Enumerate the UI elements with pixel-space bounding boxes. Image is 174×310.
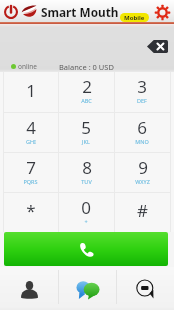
button[interactable]: Instant messaging [117, 267, 174, 310]
staticText: 2 [82, 75, 92, 98]
button[interactable]: 6 [114, 113, 170, 152]
staticText: DEF [137, 97, 147, 104]
staticText: # [137, 199, 148, 222]
staticText: 6 [137, 116, 147, 139]
staticText: MNO [135, 138, 149, 145]
button[interactable]: # [114, 193, 170, 232]
button[interactable]: 1 [3, 72, 58, 112]
staticText: 4 [26, 116, 36, 139]
button[interactable]: Call [4, 232, 168, 266]
staticText: 8 [82, 156, 92, 179]
staticText: PQRS [23, 178, 38, 185]
button[interactable]: 5 [58, 113, 114, 152]
button[interactable]: 9 [114, 153, 170, 192]
staticText: 1 [26, 79, 36, 102]
staticText: ABC [81, 97, 92, 104]
button[interactable]: Messages [59, 267, 116, 310]
button[interactable]: Power off [1, 1, 20, 23]
button[interactable]: 3 [114, 72, 170, 112]
staticText: 3 [137, 75, 147, 98]
button[interactable]: 8 [58, 153, 114, 192]
button[interactable]: 4 [3, 113, 58, 152]
button[interactable]: 2 [58, 72, 114, 112]
staticText: GHI [26, 138, 36, 145]
button[interactable]: * [3, 193, 58, 232]
staticText: TUV [81, 178, 92, 185]
staticText: Smart Mouth [41, 4, 119, 20]
staticText: JKL [82, 138, 90, 145]
staticText: 5 [81, 116, 91, 139]
staticText: WXYZ [135, 178, 150, 185]
staticText: 7 [26, 156, 36, 179]
staticText: Balance : 0 USD [59, 62, 114, 72]
button[interactable]: Backspace [146, 39, 168, 54]
button[interactable]: Settings [151, 1, 173, 23]
button[interactable]: 7 [3, 153, 58, 192]
staticText: * [26, 199, 36, 222]
staticText: 0 [81, 196, 91, 219]
button[interactable]: Contacts [0, 267, 58, 310]
staticText: + [84, 218, 88, 225]
staticText: online [18, 62, 37, 71]
staticText: Mobile [124, 14, 145, 22]
staticText: 9 [138, 156, 148, 179]
button[interactable]: 0 [58, 193, 114, 232]
